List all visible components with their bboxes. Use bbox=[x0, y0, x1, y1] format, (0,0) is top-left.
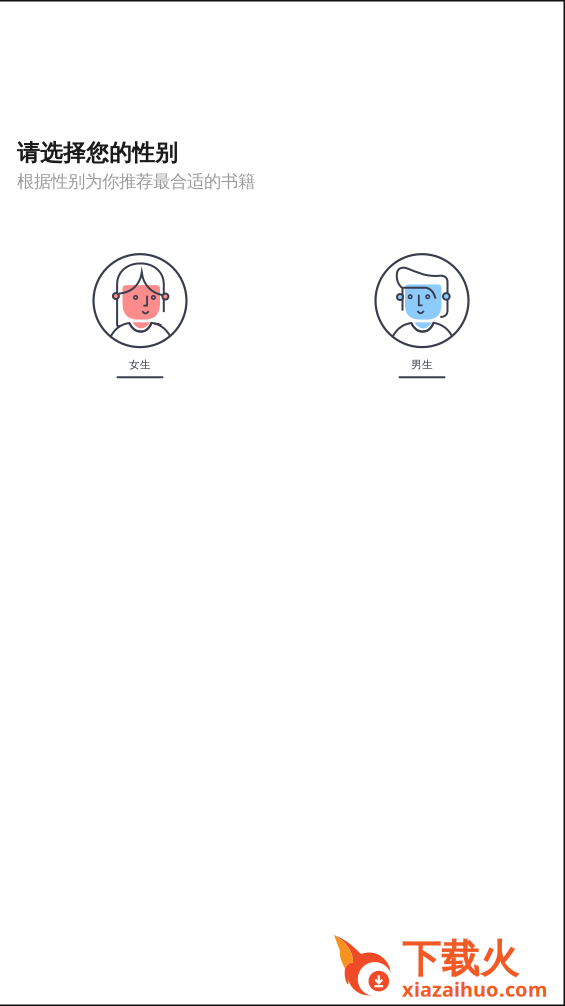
staticText: 女生 bbox=[129, 358, 151, 371]
button[interactable]: 男生 bbox=[372, 254, 472, 378]
button[interactable]: 女生 bbox=[90, 254, 190, 378]
staticText: 下载火 bbox=[402, 935, 519, 983]
staticText: xiazaihuo.com bbox=[402, 976, 548, 1002]
staticText: 请选择您的性别 bbox=[17, 139, 178, 167]
staticText: 男生 bbox=[411, 358, 433, 371]
staticText: 根据性别为你推荐最合适的书籍 bbox=[17, 171, 255, 192]
